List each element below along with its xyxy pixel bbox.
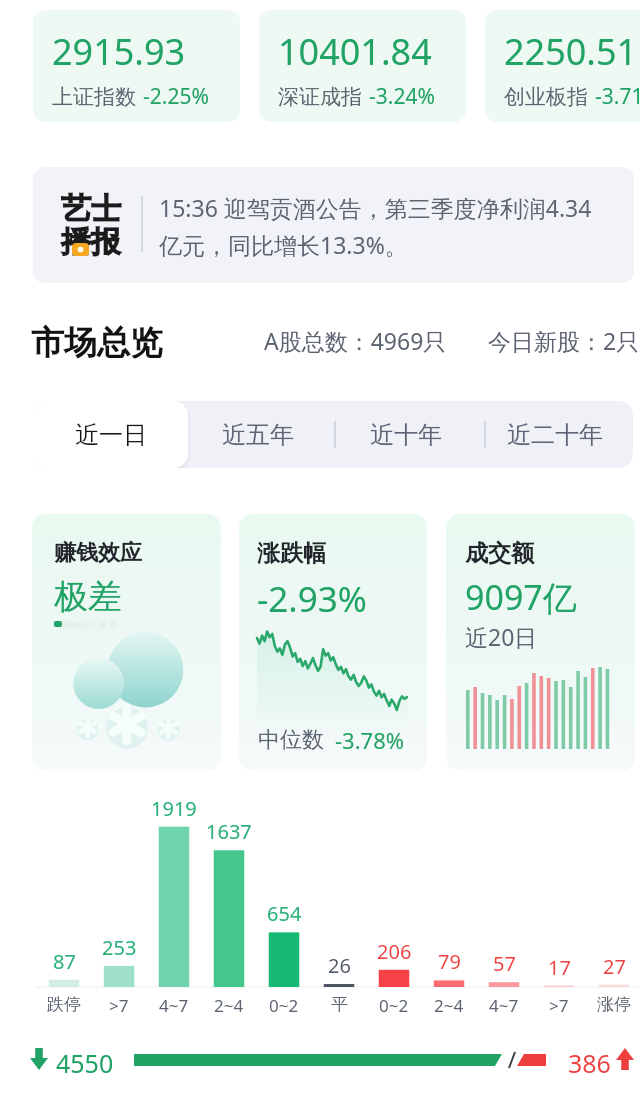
other: 上涨	[616, 1048, 634, 1070]
staticText: 206	[377, 938, 412, 965]
staticText: 2250.51	[504, 27, 638, 76]
staticText: 26	[328, 952, 351, 979]
staticText: 10401.84	[278, 27, 432, 76]
staticText: 17	[548, 954, 571, 981]
staticText: 1637	[206, 818, 252, 845]
button[interactable]: 近十年	[370, 401, 442, 468]
staticText: 亿元，同比增长13.3%。	[159, 229, 408, 260]
button[interactable]: 近五年	[222, 401, 294, 468]
staticText: -3.78%	[335, 725, 405, 755]
staticText: 15:36 迎驾贡酒公告，第三季度净利润4.34	[159, 192, 592, 223]
staticText: 1919	[151, 795, 197, 822]
staticText: >7	[109, 994, 129, 1017]
staticText: 平	[331, 994, 348, 1015]
staticText: 79	[438, 948, 461, 975]
staticText: 赚钱效应	[54, 539, 142, 567]
staticText: 87	[53, 948, 76, 975]
staticText: 播报	[61, 223, 121, 261]
staticText: 386	[568, 1046, 611, 1080]
staticText: 近20日	[465, 621, 538, 652]
staticText: 近一日	[75, 420, 147, 450]
staticText: 27	[603, 953, 626, 980]
staticText: -2.93%	[257, 575, 367, 623]
staticText: 4~7	[159, 994, 189, 1017]
staticText: -3.24%	[369, 82, 435, 111]
staticText: 今日新股：2只	[488, 325, 640, 356]
staticText: 4550	[56, 1046, 114, 1080]
staticText: 近二十年	[507, 420, 603, 450]
staticText: A股总数：4969只	[264, 325, 447, 356]
staticText: 跌停	[47, 994, 81, 1015]
staticText: 极差	[54, 575, 122, 618]
staticText: 市场总览	[31, 322, 163, 364]
staticText: 9097亿	[465, 574, 577, 620]
staticText: 创业板指	[504, 84, 588, 110]
staticText: 4~7	[489, 994, 519, 1017]
staticText: 成交额	[465, 539, 534, 568]
staticText: 艺士	[61, 190, 121, 228]
staticText: 253	[102, 934, 137, 961]
button[interactable]: 近二十年	[507, 401, 603, 468]
button[interactable]: 2915.93	[33, 10, 240, 122]
button[interactable]: 涨跌幅	[239, 514, 427, 771]
staticText: -2.25%	[143, 82, 209, 111]
staticText: 0~2	[269, 994, 299, 1017]
staticText: >7	[549, 994, 569, 1017]
staticText: 近五年	[222, 420, 294, 450]
staticText: 上证指数	[52, 84, 136, 110]
staticText: 57	[493, 950, 516, 977]
staticText: 近十年	[370, 420, 442, 450]
button[interactable]: 赚钱效应	[32, 514, 221, 771]
staticText: 涨跌幅	[257, 539, 326, 568]
button[interactable]: 艺士	[33, 167, 634, 283]
button[interactable]: 2250.51	[485, 10, 640, 122]
button[interactable]: 近一日	[33, 401, 188, 468]
staticText: 2~4	[214, 994, 244, 1017]
staticText: 赚钱效应极差	[63, 619, 117, 630]
staticText: 2915.93	[52, 27, 186, 76]
staticText: 0~2	[379, 994, 409, 1017]
other: 下跌	[30, 1048, 48, 1070]
staticText: -3.71%	[595, 82, 640, 111]
button[interactable]: 成交额	[446, 514, 635, 771]
staticText: 2~4	[434, 994, 464, 1017]
staticText: 中位数	[258, 726, 324, 754]
staticText: 深证成指	[278, 84, 362, 110]
staticText: 涨停	[597, 994, 631, 1015]
staticText: 654	[267, 900, 302, 927]
button[interactable]: 10401.84	[259, 10, 466, 122]
